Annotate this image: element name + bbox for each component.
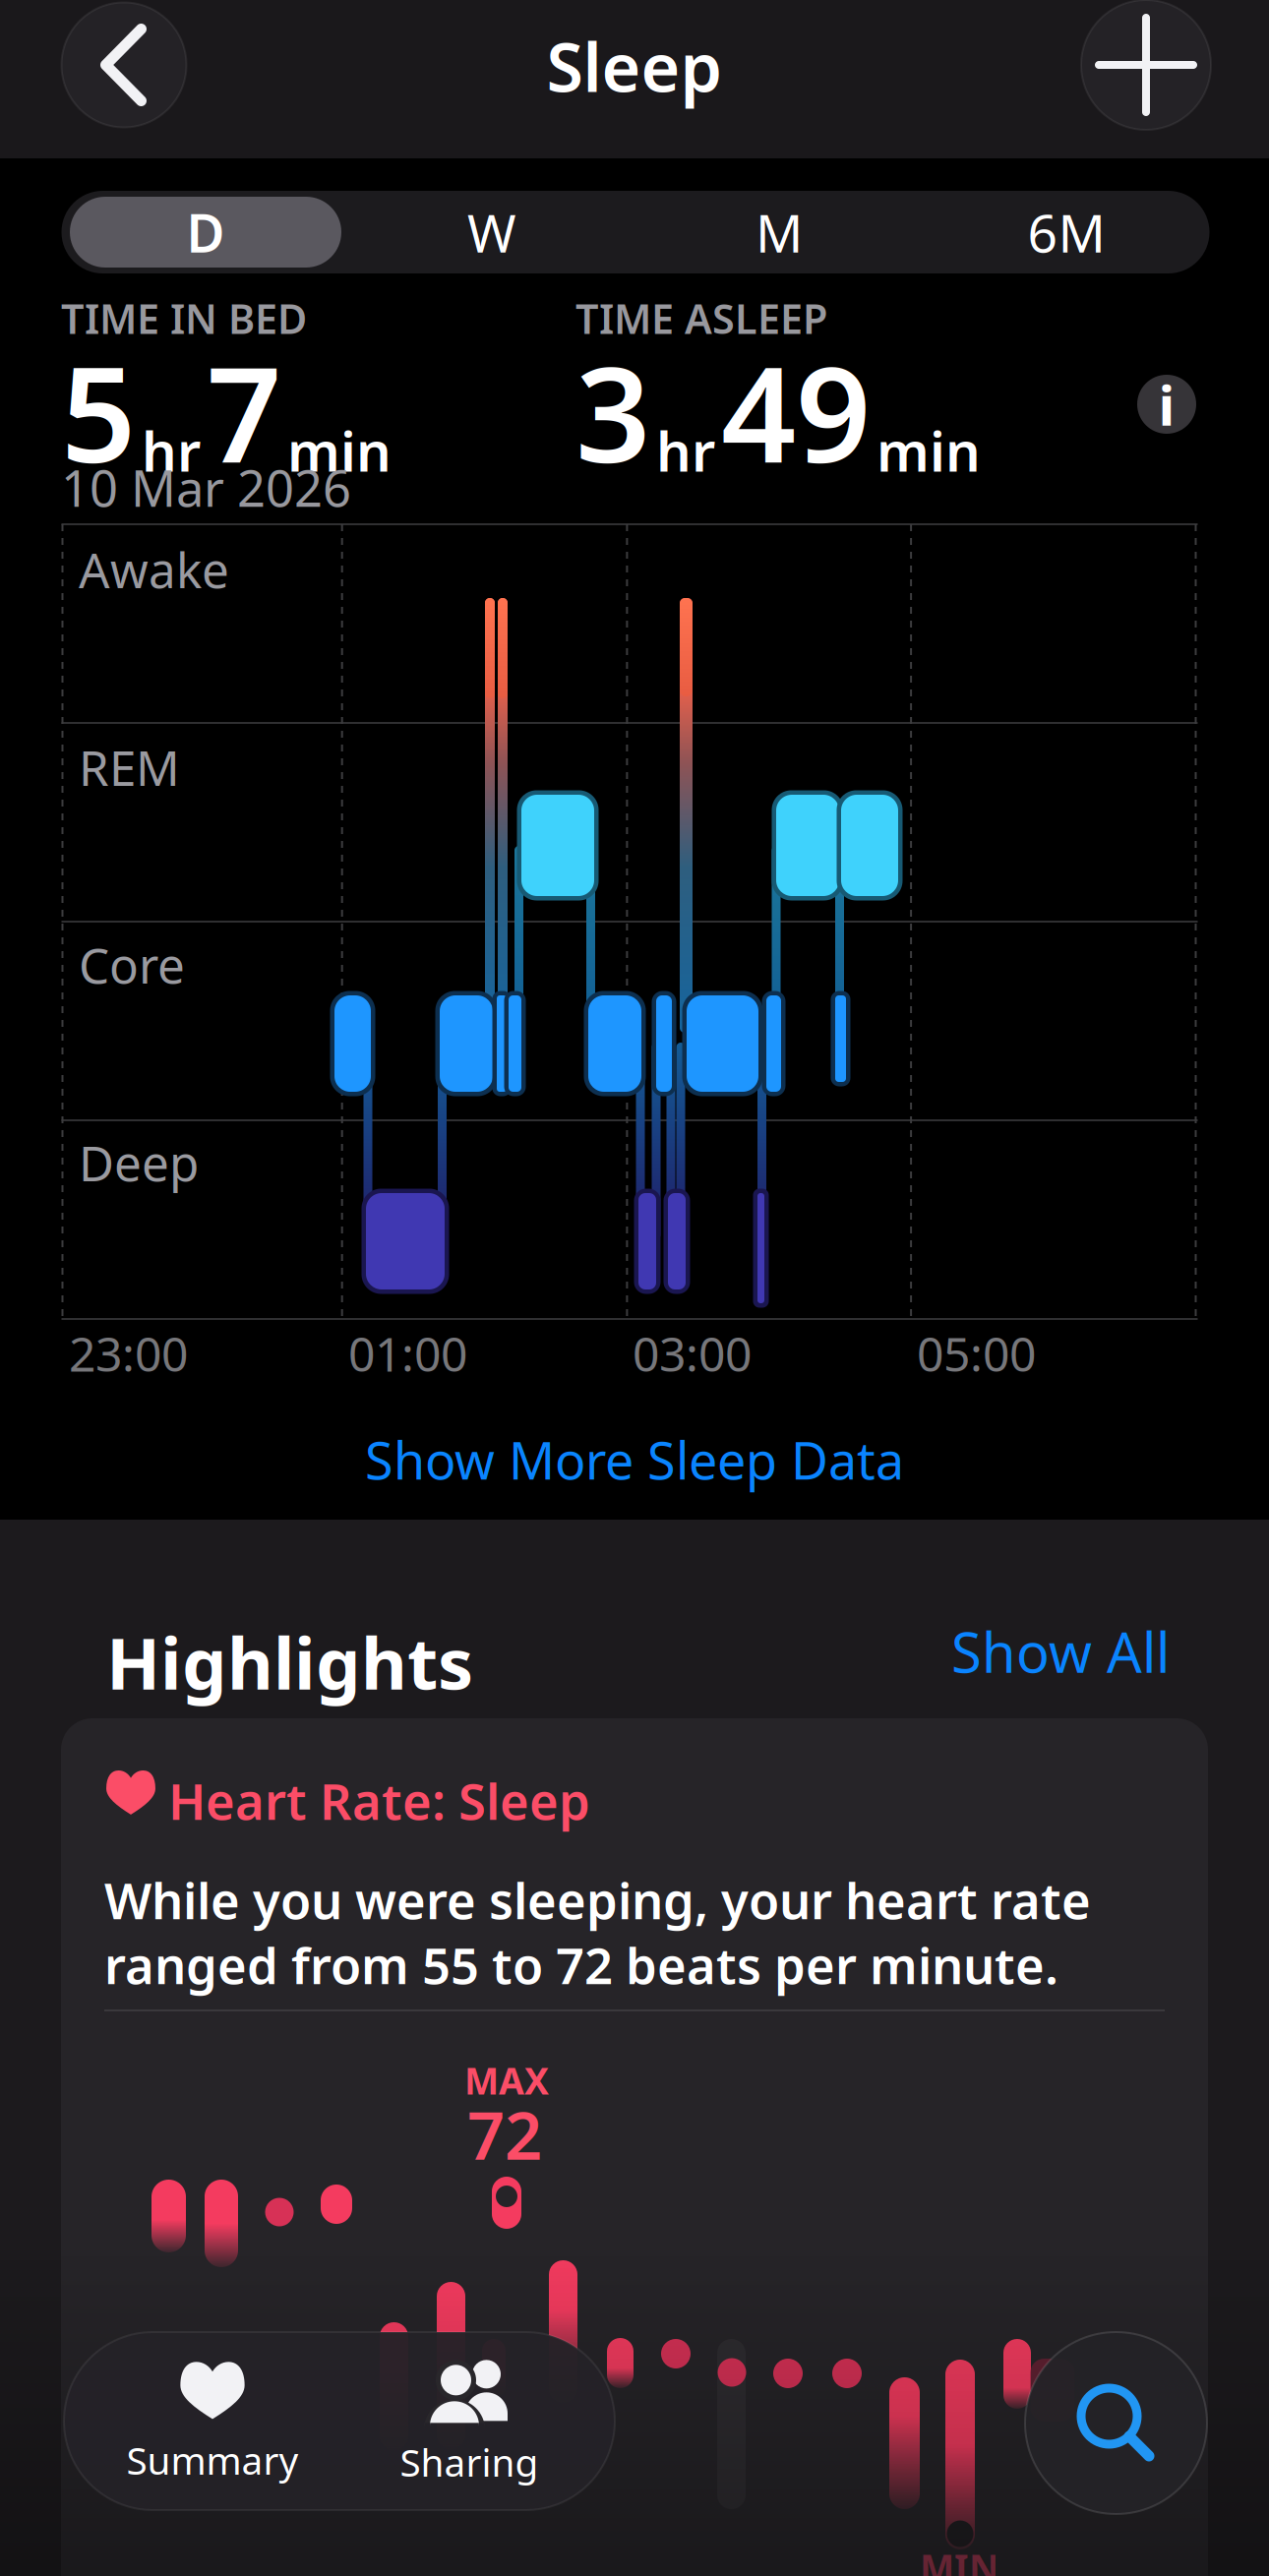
button[interactable]: 6M <box>923 191 1210 273</box>
button[interactable]: Summary <box>90 2340 335 2507</box>
staticText: TIME IN BED <box>61 291 307 345</box>
button[interactable]: M <box>635 191 923 273</box>
staticText: MAX <box>464 2056 549 2105</box>
staticText: 10 Mar 2026 <box>61 454 351 521</box>
button[interactable]: Show All <box>951 1615 1170 1688</box>
button[interactable]: D <box>62 191 349 273</box>
staticText: 3 <box>575 325 650 499</box>
staticText: min <box>876 414 981 487</box>
button[interactable] <box>61 2 186 127</box>
staticText: 05:00 <box>917 1322 1036 1385</box>
staticText: hr <box>142 414 201 487</box>
staticText: W <box>467 197 516 267</box>
staticText: 49 <box>721 325 871 499</box>
staticText: MIN <box>920 2543 998 2576</box>
staticText: D <box>186 197 225 267</box>
staticText: REM <box>79 735 180 799</box>
staticText: Awake <box>79 537 229 601</box>
staticText: Heart Rate: Sleep <box>168 1767 590 1834</box>
button[interactable]: Show More Sleep Data <box>143 1415 1126 1504</box>
staticText: hr <box>656 414 715 487</box>
staticText: Show All <box>951 1615 1170 1688</box>
staticText: 5 <box>61 325 136 499</box>
button[interactable] <box>1081 0 1211 130</box>
staticText: 7 <box>207 325 281 499</box>
button[interactable] <box>1025 2332 1207 2514</box>
staticText: 23:00 <box>69 1322 188 1385</box>
staticText: i <box>1158 368 1175 441</box>
staticText: ranged from 55 to 72 beats per minute. <box>104 1932 1058 1998</box>
staticText: Sleep <box>546 21 723 110</box>
staticText: Highlights <box>106 1615 473 1709</box>
staticText: 6M <box>1027 197 1105 267</box>
staticText: 03:00 <box>633 1322 752 1385</box>
staticText: While you were sleeping, your heart rate <box>104 1867 1091 1933</box>
staticText: Deep <box>79 1130 199 1195</box>
staticText: 01:00 <box>348 1322 467 1385</box>
staticText: Core <box>79 932 185 997</box>
staticText: TIME ASLEEP <box>575 291 827 345</box>
staticText: Show More Sleep Data <box>365 1426 904 1494</box>
staticText: Summary <box>126 2435 299 2485</box>
button[interactable]: Sharing <box>346 2340 592 2507</box>
button[interactable]: W <box>348 191 635 273</box>
staticText: 72 <box>467 2091 542 2178</box>
staticText: M <box>755 197 803 267</box>
button[interactable]: i <box>1137 375 1196 434</box>
staticText: Sharing <box>400 2437 539 2487</box>
staticText: min <box>287 414 392 487</box>
